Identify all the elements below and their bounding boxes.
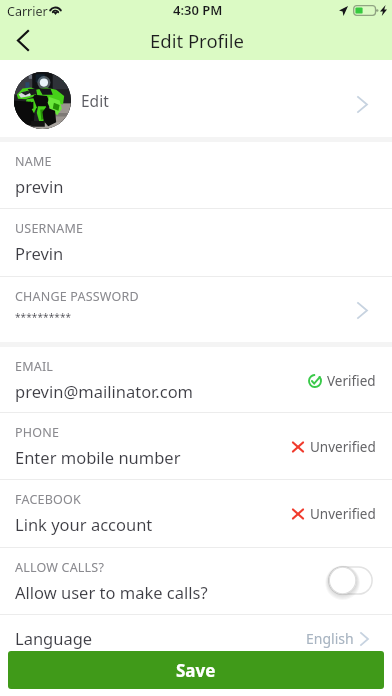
- staticText: NAME: [15, 153, 52, 170]
- staticText: Link your account: [15, 513, 153, 535]
- staticText: English: [306, 629, 354, 648]
- staticText: EMAIL: [15, 358, 54, 375]
- staticText: **********: [15, 310, 72, 324]
- staticText: Carrier: [7, 3, 48, 20]
- button[interactable]: ALLOW CALLS?: [0, 548, 392, 615]
- staticText: CHANGE PASSWORD: [15, 288, 139, 305]
- staticText: Unverified: [310, 438, 376, 456]
- staticText: FACEBOOK: [15, 491, 81, 508]
- staticText: Allow user to make calls?: [15, 581, 208, 603]
- staticText: ALLOW CALLS?: [15, 559, 105, 576]
- staticText: Save: [176, 659, 216, 682]
- staticText: PHONE: [15, 424, 60, 441]
- staticText: Unverified: [310, 505, 376, 523]
- staticText: Language: [15, 627, 93, 649]
- button[interactable]: Save: [8, 651, 384, 689]
- staticText: 4:30 PM: [173, 1, 223, 19]
- button[interactable]: Language: [0, 615, 392, 675]
- staticText: USERNAME: [15, 220, 84, 237]
- staticText: Verified: [327, 372, 376, 390]
- staticText: Enter mobile number: [15, 446, 181, 468]
- staticText: Edit: [81, 90, 109, 111]
- button[interactable]: Edit: [0, 60, 392, 137]
- button[interactable]: EMAIL: [0, 347, 392, 413]
- staticText: Previn: [15, 242, 64, 264]
- button[interactable]: FACEBOOK: [0, 480, 392, 548]
- button[interactable]: PHONE: [0, 413, 392, 480]
- button[interactable]: Back: [0, 22, 46, 60]
- staticText: previn: [15, 175, 64, 197]
- button[interactable]: NAME: [0, 142, 392, 209]
- staticText: Edit Profile: [150, 28, 244, 53]
- button[interactable]: USERNAME: [0, 209, 392, 277]
- staticText: previn@mailinator.com: [15, 380, 194, 402]
- button[interactable]: CHANGE PASSWORD: [0, 277, 392, 342]
